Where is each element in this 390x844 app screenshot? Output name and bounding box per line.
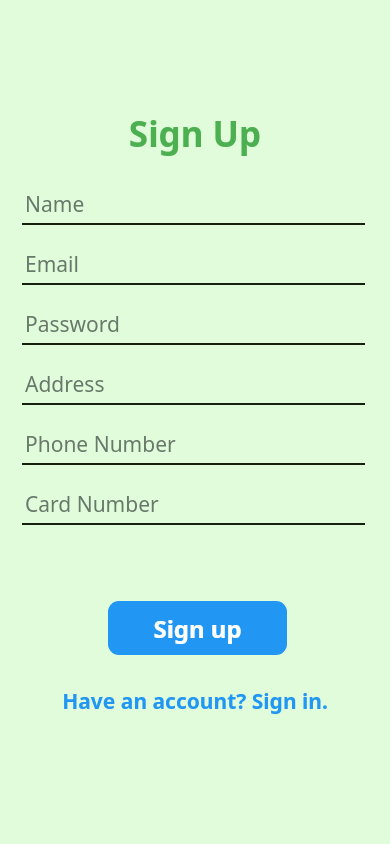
button[interactable]: Name [0,190,390,234]
button[interactable]: Card Number [0,490,390,534]
staticText: Sign Up [0,110,390,158]
button[interactable]: Sign up [108,601,287,655]
button[interactable]: Address [0,370,390,414]
staticText: Name [25,190,85,219]
staticText: Address [25,370,105,399]
staticText: Password [25,310,120,339]
staticText: Have an account? Sign in. [0,687,390,716]
button[interactable]: Phone Number [0,430,390,474]
staticText: Email [25,250,79,279]
button[interactable]: Email [0,250,390,294]
button[interactable]: Have an account? Sign in. [0,684,390,718]
staticText: Phone Number [25,430,176,459]
staticText: Card Number [25,490,159,519]
button[interactable]: Password [0,310,390,354]
staticText: Sign up [153,612,242,645]
